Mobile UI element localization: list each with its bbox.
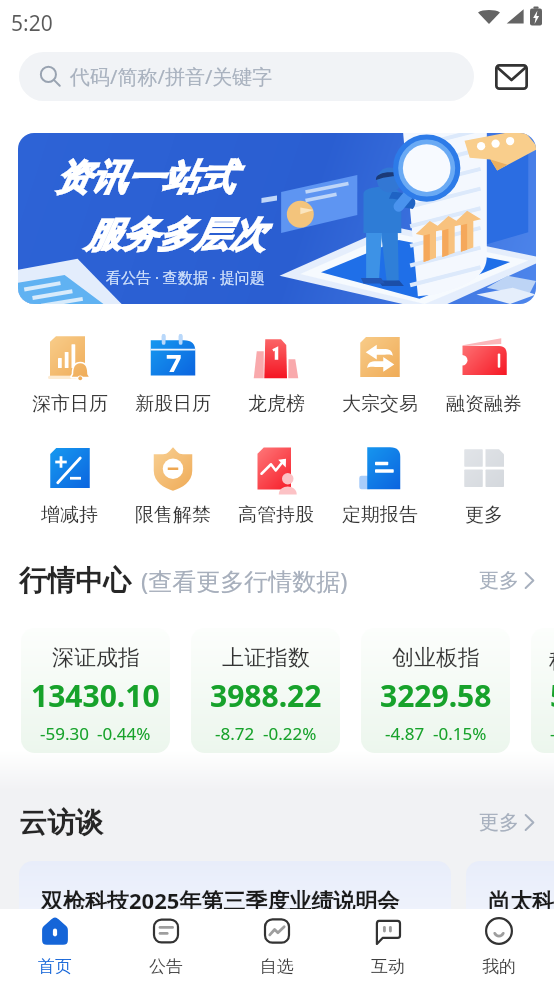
button[interactable]: Messages — [489, 55, 533, 99]
staticText: 自选 — [260, 956, 294, 977]
staticText: 双枪科技2025年第三季度业绩说明会 — [41, 885, 400, 915]
staticText: 创业板指 — [392, 644, 480, 672]
staticText: 融资融券 — [446, 392, 522, 416]
staticText: 深证成指 — [52, 644, 140, 672]
button[interactable]: 创业板指 — [361, 628, 510, 753]
button[interactable]: 上证指数 — [191, 628, 340, 753]
button[interactable]: 限售解禁 — [121, 443, 224, 527]
staticText: 首页 — [38, 956, 72, 977]
button[interactable]: 更多 — [432, 443, 536, 527]
staticText: 定期报告 — [342, 503, 418, 527]
staticText: 公告 — [149, 956, 183, 977]
staticText: -8.72 — [215, 722, 255, 745]
button[interactable]: 大宗交易 — [328, 332, 432, 416]
staticText: 增减持 — [41, 503, 98, 527]
button[interactable]: 首页 — [0, 909, 110, 984]
staticText: 服务多层次 — [85, 212, 265, 257]
button[interactable]: 双枪科技2025年第三季度业绩说明会 — [19, 861, 451, 983]
staticText: 5612.30 — [550, 675, 554, 716]
staticText: 高管持股 — [238, 503, 314, 527]
staticText: -0.15% — [433, 722, 487, 745]
staticText: 5:20 — [11, 9, 53, 38]
staticText: -0.22% — [263, 722, 317, 745]
staticText: 大宗交易 — [342, 392, 418, 416]
staticText: 深市日历 — [32, 392, 108, 416]
staticText: 互动 — [371, 956, 405, 977]
button[interactable]: 更多 — [479, 560, 535, 601]
staticText: -12.45 — [550, 722, 554, 745]
button[interactable]: 融资融券 — [432, 332, 536, 416]
staticText: -59.30 — [40, 722, 89, 745]
button[interactable]: 增减持 — [18, 443, 121, 527]
staticText: 新股日历 — [135, 392, 211, 416]
staticText: 尚太科技2025年第三季度业绩说明会 — [488, 885, 554, 915]
staticText: 看公告 · 查数据 · 提问题 — [106, 267, 265, 287]
staticText: 3988.22 — [210, 675, 322, 716]
button[interactable]: 更多 — [479, 802, 535, 843]
button[interactable]: 深市日历 — [18, 332, 121, 416]
staticText: 代码/简称/拼音/关键字 — [70, 63, 273, 90]
button[interactable]: 自选 — [221, 909, 332, 984]
button[interactable]: 科创50指数 — [531, 628, 554, 753]
staticText: 13430.10 — [31, 675, 160, 716]
staticText: 更多 — [479, 568, 519, 593]
staticText: (查看更多行情数据) — [141, 564, 348, 597]
button[interactable]: 尚太科技2025年第三季度业绩说明会 — [466, 861, 554, 983]
staticText: 上证指数 — [222, 644, 310, 672]
staticText: -0.44% — [97, 722, 151, 745]
staticText: 更多 — [479, 810, 519, 835]
button[interactable]: 资讯一站式 — [18, 133, 536, 304]
staticText: 限售解禁 — [135, 503, 211, 527]
staticText: -4.87 — [385, 722, 425, 745]
button[interactable]: 我的 — [443, 909, 554, 984]
button[interactable]: 互动 — [332, 909, 443, 984]
button[interactable]: 新股日历 — [121, 332, 224, 416]
staticText: 资讯一站式 — [54, 155, 234, 200]
staticText: 龙虎榜 — [248, 392, 305, 416]
button[interactable]: 高管持股 — [224, 443, 328, 527]
staticText: 我的 — [482, 956, 516, 977]
staticText: 科创50指数 — [549, 644, 554, 674]
button[interactable]: 代码/简称/拼音/关键字 — [19, 52, 474, 101]
button[interactable]: 公告 — [110, 909, 221, 984]
button[interactable]: 龙虎榜 — [224, 332, 328, 416]
staticText: 行情中心 — [19, 563, 131, 598]
staticText: 更多 — [465, 503, 503, 527]
staticText: 云访谈 — [19, 805, 103, 840]
button[interactable]: 深证成指 — [21, 628, 170, 753]
button[interactable]: 定期报告 — [328, 443, 432, 527]
staticText: 3229.58 — [380, 675, 492, 716]
